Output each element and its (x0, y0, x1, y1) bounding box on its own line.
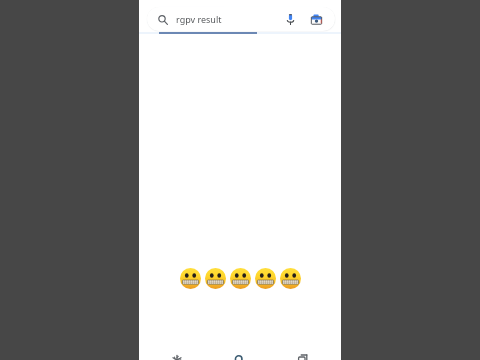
button[interactable]: Google Lens (307, 10, 325, 28)
button[interactable]: Voice search (281, 10, 299, 28)
button[interactable]: Search (207, 342, 274, 360)
staticText: rgpv result (176, 13, 222, 25)
button[interactable]: rgpv result (147, 7, 335, 31)
button[interactable]: Tabs (274, 342, 341, 360)
button[interactable]: Discover (139, 342, 207, 360)
